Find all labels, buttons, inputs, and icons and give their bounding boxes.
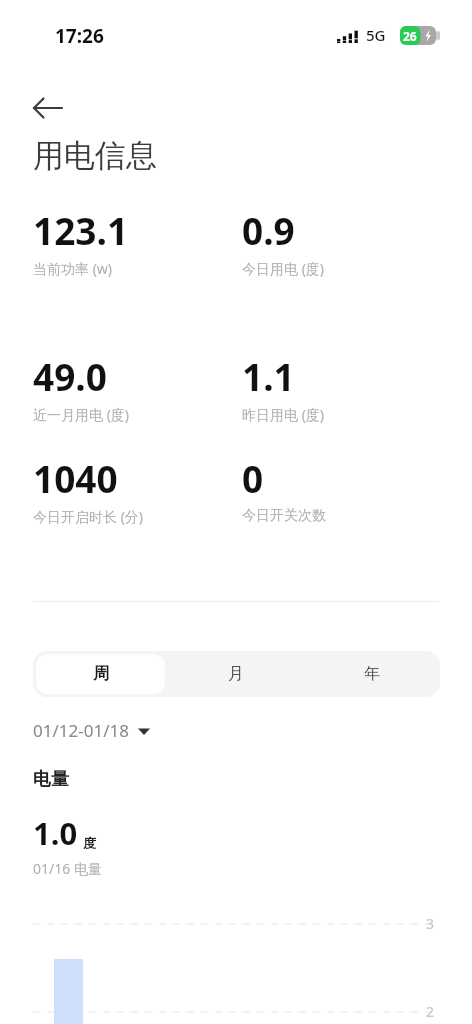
staticText: 1.1	[242, 351, 295, 401]
staticText: 年	[364, 664, 380, 684]
staticText: 0.9	[242, 205, 295, 255]
staticText: 月	[228, 664, 244, 684]
staticText: 0	[242, 453, 264, 503]
button[interactable]: 01/12-01/18	[33, 719, 150, 742]
staticText: 度	[83, 835, 96, 851]
staticText: 今日开关次数	[242, 507, 326, 525]
staticText: 123.1	[33, 205, 129, 255]
staticText: 26	[403, 28, 417, 44]
button[interactable]: 月	[171, 654, 301, 694]
staticText: 1.0	[33, 812, 78, 854]
staticText: 01/16 电量	[33, 859, 102, 878]
staticText: 01/12-01/18	[33, 719, 129, 742]
staticText: 今日用电 (度)	[242, 259, 325, 278]
button[interactable]: 年	[307, 654, 437, 694]
staticText: 17:26	[55, 23, 104, 49]
staticText: 周	[93, 664, 109, 684]
staticText: 2	[426, 1002, 435, 1021]
staticText: 用电信息	[33, 136, 157, 175]
staticText: 电量	[33, 768, 69, 791]
staticText: 3	[426, 914, 435, 933]
button[interactable]: Back	[22, 82, 74, 134]
staticText: 49.0	[33, 351, 107, 401]
staticText: 5G	[366, 25, 386, 45]
staticText: 昨日用电 (度)	[242, 405, 325, 424]
staticText: 今日开启时长 (分)	[33, 507, 144, 526]
staticText: 近一月用电 (度)	[33, 405, 130, 424]
staticText: 1040	[33, 453, 118, 503]
button[interactable]: 周	[36, 654, 165, 694]
staticText: 当前功率 (w)	[33, 259, 113, 278]
